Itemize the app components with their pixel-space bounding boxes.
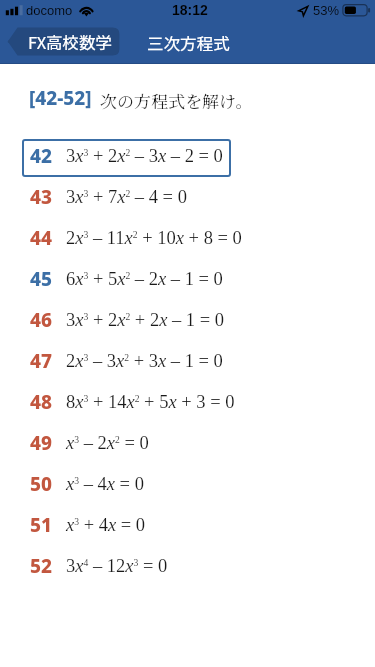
- staticText: x3 – 4x = 0: [66, 474, 144, 494]
- staticText: 3x3 + 7x2 – 4 = 0: [66, 187, 187, 207]
- staticText: 3x4 – 12x3 = 0: [66, 556, 168, 576]
- button[interactable]: 46: [0, 299, 375, 340]
- staticText: 3x3 + 2x2 + 2x – 1 = 0: [66, 310, 225, 330]
- button[interactable]: 52: [0, 545, 375, 586]
- staticText: 2x3 – 3x2 + 3x – 1 = 0: [66, 351, 223, 371]
- staticText: 45: [30, 266, 52, 292]
- button[interactable]: 43: [0, 176, 375, 217]
- button[interactable]: 50: [0, 463, 375, 504]
- staticText: 48: [30, 389, 52, 415]
- staticText: 53%: [313, 3, 340, 18]
- staticText: [42-52]: [29, 85, 92, 111]
- staticText: 51: [30, 512, 52, 538]
- staticText: 44: [30, 225, 52, 251]
- staticText: 42: [30, 143, 52, 169]
- staticText: 8x3 + 14x2 + 5x + 3 = 0: [66, 392, 235, 412]
- staticText: x3 + 4x = 0: [66, 515, 146, 535]
- button[interactable]: 42: [0, 135, 375, 176]
- button[interactable]: Back to FX高校数学: [0, 24, 375, 64]
- staticText: 18:12: [172, 2, 208, 18]
- button[interactable]: 44: [0, 217, 375, 258]
- staticText: 47: [30, 348, 52, 374]
- staticText: 52: [30, 553, 52, 579]
- staticText: 43: [30, 184, 52, 210]
- staticText: 三次方程式: [147, 31, 230, 55]
- staticText: 3x3 + 2x2 – 3x – 2 = 0: [66, 146, 223, 166]
- staticText: 46: [30, 307, 52, 333]
- staticText: 6x3 + 5x2 – 2x – 1 = 0: [66, 269, 223, 289]
- button[interactable]: 51: [0, 504, 375, 545]
- staticText: docomo: [26, 3, 73, 18]
- button[interactable]: 48: [0, 381, 375, 422]
- button[interactable]: 45: [0, 258, 375, 299]
- staticText: 次の方程式を解け。: [100, 88, 253, 112]
- staticText: FX高校数学: [28, 30, 113, 54]
- staticText: x3 – 2x2 = 0: [66, 433, 149, 453]
- staticText: 50: [30, 471, 52, 497]
- button[interactable]: 49: [0, 422, 375, 463]
- staticText: 2x3 – 11x2 + 10x + 8 = 0: [66, 228, 242, 248]
- staticText: 49: [30, 430, 52, 456]
- button[interactable]: 47: [0, 340, 375, 381]
